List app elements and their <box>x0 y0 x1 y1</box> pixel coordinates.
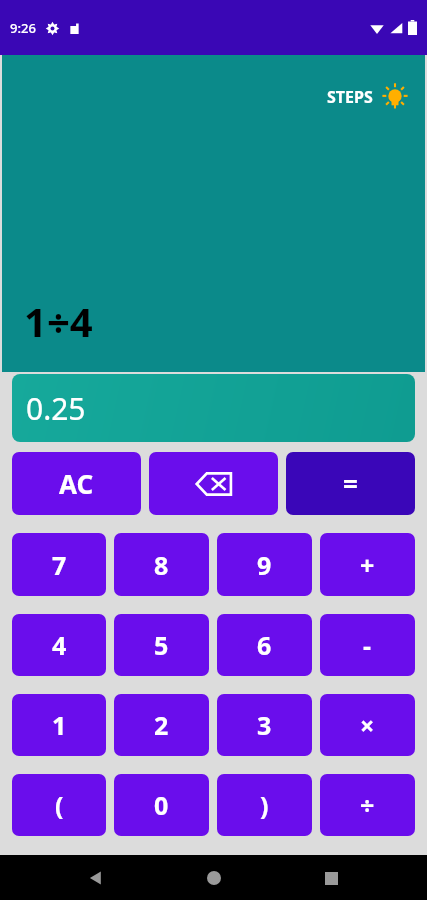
button[interactable]: STEPS <box>327 83 409 111</box>
button[interactable]: 6 <box>217 614 312 676</box>
other: Show steps <box>381 83 409 111</box>
staticText: 2 <box>154 708 169 742</box>
button[interactable]: 9 <box>217 533 312 596</box>
button[interactable]: - <box>320 614 415 676</box>
button[interactable]: + <box>320 533 415 596</box>
staticText: 8 <box>154 548 169 582</box>
staticText: 0.25 <box>26 388 86 429</box>
button[interactable]: Home <box>192 856 236 900</box>
staticText: 3 <box>257 708 272 742</box>
staticText: ) <box>260 788 269 822</box>
staticText: 1÷4 <box>24 294 93 348</box>
button[interactable]: Recent apps <box>309 856 353 900</box>
staticText: 5 <box>154 628 169 662</box>
button[interactable]: AC <box>12 452 141 515</box>
staticText: = <box>343 466 358 501</box>
staticText: ( <box>55 788 64 822</box>
button[interactable]: Backspace <box>149 452 278 515</box>
button[interactable]: Back <box>74 856 118 900</box>
button[interactable]: ( <box>12 774 106 836</box>
button[interactable]: = <box>286 452 415 515</box>
button[interactable]: 0 <box>114 774 209 836</box>
button[interactable]: 8 <box>114 533 209 596</box>
button[interactable]: 3 <box>217 694 312 756</box>
button[interactable]: × <box>320 694 415 756</box>
staticText: 4 <box>52 628 67 662</box>
button[interactable]: 5 <box>114 614 209 676</box>
button[interactable]: 1 <box>12 694 106 756</box>
staticText: ÷ <box>360 788 375 822</box>
staticText: STEPS <box>327 86 373 108</box>
button[interactable]: ÷ <box>320 774 415 836</box>
staticText: 9:26 <box>10 19 36 37</box>
staticText: - <box>363 628 372 662</box>
staticText: 6 <box>257 628 272 662</box>
staticText: 0 <box>154 788 169 822</box>
button[interactable]: 4 <box>12 614 106 676</box>
staticText: + <box>360 548 375 582</box>
staticText: AC <box>59 466 94 501</box>
button[interactable]: ) <box>217 774 312 836</box>
button[interactable]: 7 <box>12 533 106 596</box>
button[interactable]: 2 <box>114 694 209 756</box>
staticText: 7 <box>52 548 67 582</box>
button[interactable]: 0.25 <box>12 374 415 442</box>
staticText: 1 <box>52 708 67 742</box>
staticText: × <box>360 708 375 742</box>
staticText: 9 <box>257 548 272 582</box>
